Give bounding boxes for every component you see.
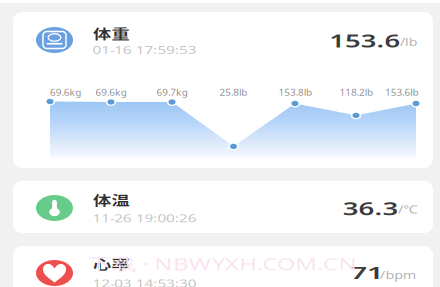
staticText: 11-26 19:00:26 [93, 211, 165, 225]
staticText: 118.2lb [339, 86, 368, 98]
button[interactable]: 心率 [13, 246, 433, 287]
staticText: 25.8lb [219, 86, 243, 98]
staticText: 36.3 [343, 197, 378, 220]
button[interactable]: 体重 [13, 12, 433, 80]
staticText: 01-16 17:59:53 [93, 43, 165, 57]
staticText: 体重 [93, 24, 119, 42]
staticText: 69.6kg [95, 86, 122, 98]
staticText: 153.6lb [385, 86, 414, 98]
staticText: 下载 · NBWYXH.COM.CN [88, 252, 275, 275]
staticText: 体温 [93, 190, 119, 209]
staticText: 69.6kg [50, 86, 77, 98]
button[interactable]: 体温 [13, 181, 433, 233]
staticText: 心率 [93, 254, 119, 272]
staticText: 153.6 [329, 29, 374, 53]
staticText: /lb [400, 34, 414, 49]
staticText: /℃ [398, 201, 413, 217]
staticText: 69.7kg [156, 86, 183, 98]
staticText: 71 [350, 262, 368, 284]
staticText: /bpm [380, 268, 405, 282]
staticText: 12-03 14:53:30 [93, 276, 165, 287]
staticText: 153.8lb [278, 86, 307, 98]
